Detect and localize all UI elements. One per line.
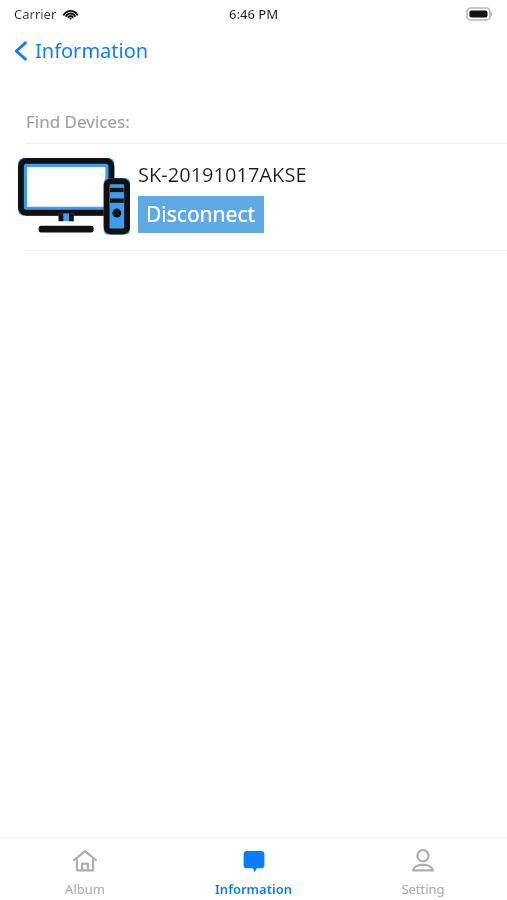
staticText: Information [35,37,149,64]
other: Back [14,39,28,63]
staticText: SK-20191017AKSE [138,161,307,188]
staticText: Find Devices: [26,110,130,133]
staticText: Disconnect [146,200,256,229]
button[interactable]: Back [10,33,153,68]
button[interactable]: Disconnect [138,196,264,233]
button[interactable]: Album [0,838,169,900]
staticText: Album [65,880,105,898]
button[interactable]: Setting [338,838,507,900]
staticText: Carrier [14,5,57,23]
staticText: Information [215,880,292,898]
button[interactable]: Information [169,838,338,900]
staticText: 6:46 PM [229,5,279,23]
button[interactable]: Computer [0,144,507,250]
staticText: Setting [401,880,445,898]
other: Computer [18,158,130,236]
